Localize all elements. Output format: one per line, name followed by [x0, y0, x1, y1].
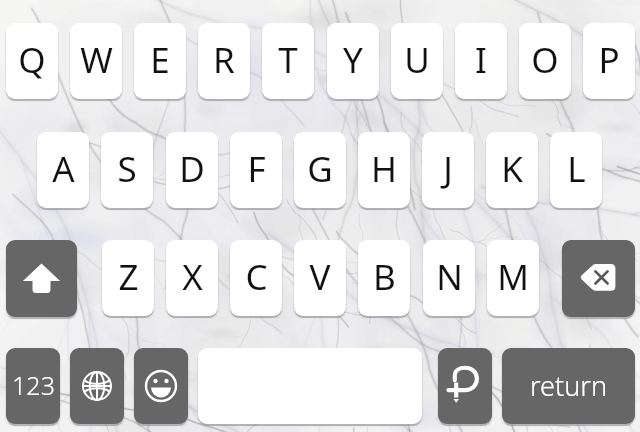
button[interactable]: H: [358, 132, 410, 208]
button[interactable]: D: [166, 132, 218, 208]
staticText: E: [150, 36, 170, 84]
staticText: K: [501, 145, 523, 193]
button[interactable]: Paste: [438, 348, 492, 424]
button[interactable]: M: [487, 240, 539, 316]
button[interactable]: F: [230, 132, 282, 208]
button[interactable]: W: [70, 23, 122, 99]
button[interactable]: P: [583, 23, 635, 99]
button[interactable]: R: [198, 23, 250, 99]
staticText: H: [371, 145, 397, 193]
button[interactable]: return: [502, 348, 635, 424]
button[interactable]: T: [262, 23, 314, 99]
staticText: O: [531, 36, 559, 84]
staticText: T: [278, 36, 298, 84]
button[interactable]: N: [423, 240, 475, 316]
button[interactable]: Y: [327, 23, 379, 99]
button[interactable]: L: [550, 132, 602, 208]
staticText: P: [598, 36, 620, 84]
button[interactable]: A: [37, 132, 89, 208]
button[interactable]: 123: [6, 348, 60, 424]
staticText: W: [80, 36, 113, 84]
staticText: G: [307, 145, 333, 193]
button[interactable]: C: [230, 240, 282, 316]
staticText: I: [475, 36, 487, 84]
button[interactable]: J: [422, 132, 474, 208]
staticText: F: [247, 145, 266, 193]
staticText: Y: [343, 36, 363, 84]
staticText: V: [309, 253, 331, 301]
button[interactable]: Emoji: [134, 348, 188, 424]
button[interactable]: Backspace: [562, 240, 635, 317]
staticText: X: [182, 253, 203, 301]
button[interactable]: G: [294, 132, 346, 208]
staticText: R: [213, 36, 235, 84]
button[interactable]: O: [519, 23, 571, 99]
button[interactable]: U: [391, 23, 443, 99]
staticText: 123: [12, 368, 55, 402]
staticText: C: [245, 253, 268, 301]
staticText: A: [52, 145, 75, 193]
staticText: Q: [18, 36, 46, 84]
staticText: D: [179, 145, 205, 193]
staticText: J: [443, 145, 453, 193]
staticText: L: [567, 145, 586, 193]
button[interactable]: I: [455, 23, 507, 99]
button[interactable]: E: [134, 23, 186, 99]
button[interactable]: V: [294, 240, 346, 316]
button[interactable]: B: [358, 240, 410, 316]
button[interactable]: X: [166, 240, 218, 316]
button[interactable]: S: [101, 132, 153, 208]
staticText: M: [497, 253, 529, 301]
button[interactable]: Z: [102, 240, 154, 316]
staticText: B: [373, 253, 396, 301]
staticText: S: [117, 145, 137, 193]
button[interactable]: Change language: [70, 348, 124, 424]
staticText: Z: [118, 253, 139, 301]
button[interactable]: Shift: [6, 240, 77, 317]
button[interactable]: Q: [6, 23, 58, 99]
staticText: U: [404, 36, 430, 84]
staticText: return: [530, 367, 607, 404]
staticText: N: [436, 253, 463, 301]
button[interactable]: K: [486, 132, 538, 208]
